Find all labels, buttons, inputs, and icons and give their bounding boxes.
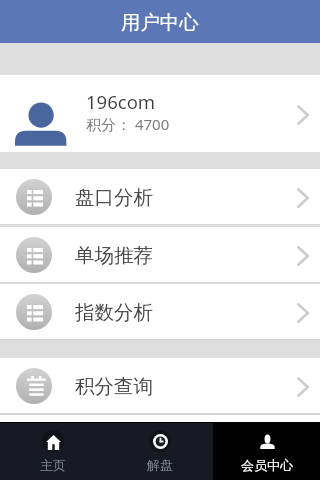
button[interactable]: 主页 bbox=[0, 423, 106, 480]
button[interactable]: 196com bbox=[0, 75, 320, 152]
button[interactable]: 盘口分析 bbox=[0, 169, 320, 225]
staticText: 盘口分析 bbox=[75, 185, 153, 210]
button[interactable]: 积分查询 bbox=[0, 358, 320, 414]
button[interactable]: 会员中心 bbox=[213, 423, 320, 480]
staticText: 积分查询 bbox=[75, 374, 153, 399]
staticText: 解盘 bbox=[147, 457, 173, 473]
button[interactable]: 单场推荐 bbox=[0, 227, 320, 283]
button[interactable]: 解盘 bbox=[106, 423, 213, 480]
staticText: 用户中心 bbox=[121, 10, 199, 34]
button[interactable]: 指数分析 bbox=[0, 284, 320, 340]
staticText: 单场推荐 bbox=[75, 243, 153, 268]
staticText: 积分： 4700 bbox=[86, 114, 170, 134]
staticText: 会员中心 bbox=[241, 457, 293, 473]
staticText: 主页 bbox=[40, 457, 66, 473]
staticText: 指数分析 bbox=[75, 300, 153, 325]
staticText: 196com bbox=[86, 89, 156, 114]
